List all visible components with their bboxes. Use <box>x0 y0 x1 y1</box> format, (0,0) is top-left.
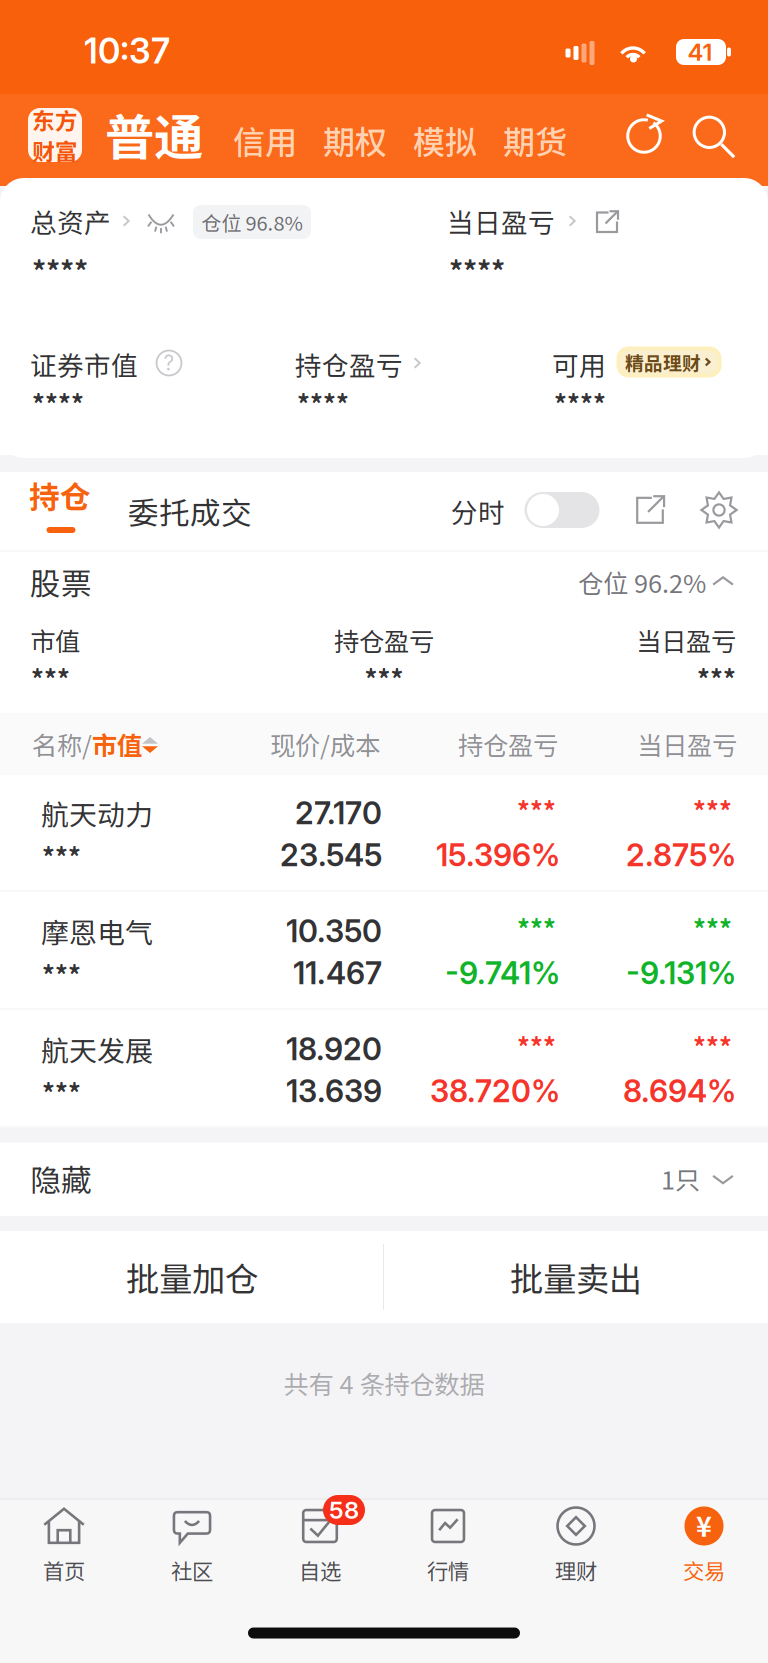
staticText: 股票 <box>30 560 92 604</box>
button[interactable]: 持仓 <box>20 471 100 551</box>
staticText: **** <box>32 249 88 289</box>
staticText: *** <box>697 660 736 696</box>
staticText: 41 <box>687 37 712 66</box>
button[interactable]: 普通 <box>105 98 203 170</box>
button[interactable]: 委托成交 <box>128 489 252 533</box>
staticText: 首页 <box>43 1555 85 1585</box>
staticText: 持仓 <box>29 473 91 517</box>
staticText: 行情 <box>427 1555 469 1585</box>
staticText: ¥ <box>696 1505 712 1544</box>
button[interactable]: Share <box>634 494 666 526</box>
button[interactable]: 分时 toggle <box>524 492 599 528</box>
staticText: 委托成交 <box>128 489 252 533</box>
button[interactable]: 摩恩电气 <box>0 892 768 1010</box>
button[interactable]: 隐藏 <box>0 1142 768 1215</box>
button[interactable]: 理财 <box>512 1498 640 1602</box>
staticText: 18.920 <box>286 1030 382 1067</box>
staticText: *** <box>42 838 81 874</box>
staticText: *** <box>517 1028 556 1064</box>
button[interactable]: Settings <box>699 490 739 530</box>
button[interactable]: 首页 <box>0 1498 128 1602</box>
staticText: -9.131% <box>626 954 736 991</box>
staticText: *** <box>517 792 556 828</box>
button[interactable]: Search <box>690 113 736 159</box>
button[interactable]: 期权 <box>323 117 387 163</box>
staticText: 市值 <box>30 622 80 658</box>
staticText: 共有 4 条持仓数据 <box>283 1365 484 1401</box>
staticText: 2.875% <box>626 836 736 873</box>
staticText: ? <box>163 350 174 375</box>
staticText: *** <box>693 792 732 828</box>
staticText: 批量卖出 <box>510 1253 642 1301</box>
staticText: 持仓盈亏 <box>458 726 558 762</box>
staticText: 期权 <box>323 117 387 163</box>
button[interactable]: 航天发展 <box>0 1010 768 1128</box>
staticText: 航天动力 <box>41 793 153 833</box>
staticText: 模拟 <box>413 117 477 163</box>
staticText: *** <box>42 1074 81 1110</box>
staticText: *** <box>42 956 81 992</box>
staticText: 财富 <box>32 134 78 167</box>
staticText: 11.467 <box>293 954 382 991</box>
staticText: **** <box>297 385 349 421</box>
staticText: 持仓盈亏 <box>295 345 403 383</box>
staticText: 13.639 <box>286 1072 382 1109</box>
button[interactable]: 精品理财 <box>616 346 721 377</box>
staticText: *** <box>31 660 70 696</box>
staticText: 现价/成本 <box>270 726 380 762</box>
button[interactable]: 期货 <box>503 117 567 163</box>
staticText: 批量加仓 <box>126 1253 258 1301</box>
button[interactable]: 批量卖出 <box>384 1231 768 1323</box>
staticText: 当日盈亏 <box>447 202 555 240</box>
staticText: 东方 <box>32 103 78 136</box>
staticText: 23.545 <box>280 836 382 873</box>
staticText: 仓位 96.2% <box>578 564 706 600</box>
staticText: 10:37 <box>84 30 170 72</box>
staticText: 15.396% <box>436 836 560 873</box>
staticText: 摩恩电气 <box>41 911 153 951</box>
staticText: *** <box>364 660 403 696</box>
staticText: 当日盈亏 <box>636 622 736 658</box>
staticText: 10.350 <box>286 912 382 949</box>
staticText: *** <box>693 1028 732 1064</box>
staticText: 58 <box>329 1495 359 1524</box>
button[interactable]: 58 <box>256 1498 384 1602</box>
staticText: 38.720% <box>430 1072 560 1109</box>
staticText: 分时 <box>451 492 505 530</box>
staticText: 持仓盈亏 <box>334 622 434 658</box>
staticText: 27.170 <box>295 794 382 831</box>
staticText: 1只 <box>661 1160 700 1197</box>
button[interactable]: 社区 <box>128 1498 256 1602</box>
staticText: *** <box>693 910 732 946</box>
staticText: 航天发展 <box>41 1029 153 1069</box>
button[interactable]: Refresh <box>622 114 666 158</box>
staticText: **** <box>449 249 505 289</box>
staticText: 社区 <box>171 1555 213 1585</box>
staticText: 名称/ <box>32 726 92 762</box>
staticText: 交易 <box>683 1555 725 1585</box>
staticText: 证券市值 <box>30 345 138 383</box>
staticText: **** <box>554 385 606 421</box>
staticText: 理财 <box>555 1555 597 1585</box>
staticText: 精品理财 <box>625 348 701 375</box>
staticText: 当日盈亏 <box>637 726 737 762</box>
staticText: **** <box>32 385 84 421</box>
staticText: 自选 <box>299 1555 341 1585</box>
staticText: 总资产 <box>30 202 111 240</box>
button[interactable]: 航天动力 <box>0 774 768 892</box>
staticText: 期货 <box>503 117 567 163</box>
staticText: 市值 <box>92 726 142 762</box>
staticText: 隐藏 <box>30 1156 92 1201</box>
staticText: -9.741% <box>445 954 560 991</box>
button[interactable]: 信用 <box>233 117 297 163</box>
button[interactable]: 批量加仓 <box>0 1231 384 1323</box>
staticText: 信用 <box>233 117 297 163</box>
button[interactable]: 模拟 <box>413 117 477 163</box>
button[interactable]: 行情 <box>384 1498 512 1602</box>
button[interactable]: ¥ <box>640 1498 768 1602</box>
staticText: *** <box>517 910 556 946</box>
staticText: 8.694% <box>623 1072 736 1109</box>
staticText: 仓位 96.8% <box>201 207 302 236</box>
staticText: 普通 <box>105 98 203 170</box>
staticText: 可用 <box>552 345 606 383</box>
